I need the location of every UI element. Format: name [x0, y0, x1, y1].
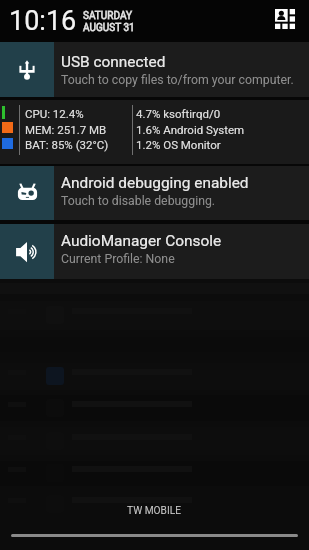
staticText: Android debugging enabled — [61, 174, 249, 192]
button[interactable]: AudioManager Console — [0, 224, 309, 279]
staticText: 1.6% Android System — [136, 123, 245, 136]
button[interactable]: Android debugging enabled — [0, 166, 309, 220]
staticText: Current Profile: None — [61, 252, 175, 266]
staticText: TW MOBILE — [127, 505, 182, 517]
button[interactable]: Quick settings — [272, 6, 300, 34]
staticText: SATURDAY — [83, 10, 132, 22]
staticText: 10:16 — [9, 5, 77, 37]
staticText: AUGUST 31 — [83, 22, 135, 34]
button[interactable]: CPU: 12.4% — [0, 100, 309, 164]
staticText: 4.7% ksoftirqd/0 — [136, 107, 221, 120]
staticText: Touch to disable debugging. — [61, 194, 216, 208]
staticText: AudioManager Console — [61, 232, 222, 250]
staticText: BAT: 85% (32°C) — [25, 138, 109, 151]
staticText: 1.2% OS Monitor — [136, 138, 221, 151]
staticText: MEM: 251.7 MB — [25, 123, 107, 136]
staticText: Touch to copy files to/from your compute… — [61, 73, 294, 87]
staticText: CPU: 12.4% — [25, 107, 84, 120]
staticText: USB connected — [61, 53, 166, 71]
button[interactable]: USB connected — [0, 42, 309, 97]
button[interactable]: Drag handle — [11, 534, 298, 537]
